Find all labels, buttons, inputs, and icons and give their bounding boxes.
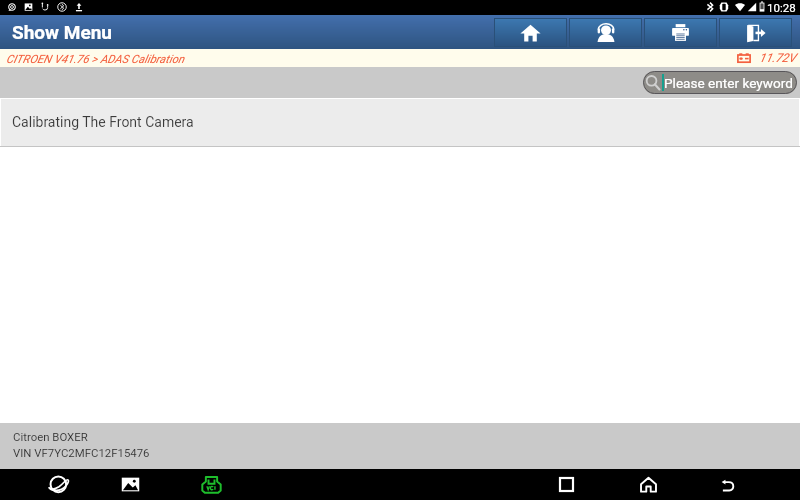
staticText: CITROEN V41.76 > ADAS Calibration	[6, 52, 185, 65]
button[interactable]: Gallery	[113, 469, 147, 500]
staticText: 11.72V	[759, 51, 796, 65]
button[interactable]: Calibrating The Front Camera	[1, 99, 799, 146]
staticText: Please enter keyword	[664, 75, 793, 91]
staticText: VIN VF7YC2MFC12F15476	[13, 446, 150, 459]
button[interactable]: Recent apps	[549, 469, 583, 500]
button[interactable]: Print	[644, 18, 717, 47]
button[interactable]: Customer support	[569, 18, 642, 47]
button[interactable]: Browser	[42, 469, 76, 500]
button[interactable]: VCI connection	[194, 469, 228, 500]
button[interactable]: Home	[494, 18, 567, 47]
button[interactable]: Home	[631, 469, 665, 500]
button[interactable]: Please enter keyword	[643, 71, 797, 94]
staticText: Calibrating The Front Camera	[12, 114, 194, 130]
staticText: Citroen BOXER	[13, 430, 88, 443]
button[interactable]: Exit	[719, 18, 792, 47]
button[interactable]: Back	[711, 469, 745, 500]
staticText: 10:28	[767, 1, 796, 14]
staticText: Show Menu	[12, 21, 112, 43]
